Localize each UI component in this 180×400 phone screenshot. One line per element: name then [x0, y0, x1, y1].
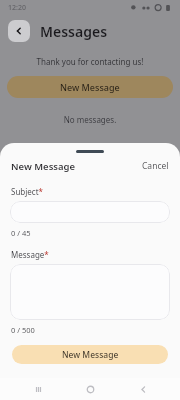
- button[interactable]: Home: [75, 378, 105, 400]
- staticText: Subject*: [11, 186, 43, 197]
- staticText: 12:20: [8, 3, 26, 13]
- button[interactable]: Back: [8, 20, 30, 42]
- staticText: New Message: [11, 160, 76, 173]
- staticText: Thank you for contacting us!: [0, 56, 180, 67]
- button[interactable]: Recents: [23, 378, 53, 400]
- staticText: No messages.: [0, 114, 180, 125]
- staticText: Cancel: [142, 160, 169, 172]
- button[interactable]: [10, 264, 170, 320]
- button[interactable]: Back: [128, 378, 158, 400]
- button[interactable]: New Message: [7, 76, 173, 98]
- button[interactable]: [10, 201, 170, 223]
- staticText: 0 / 45: [11, 228, 31, 238]
- button[interactable]: Cancel: [142, 160, 169, 172]
- staticText: New Message: [60, 81, 120, 93]
- staticText: 0 / 500: [11, 325, 35, 335]
- staticText: Message*: [11, 249, 49, 260]
- button[interactable]: New Message: [12, 345, 168, 364]
- staticText: New Message: [62, 349, 119, 361]
- staticText: Messages: [40, 22, 108, 41]
